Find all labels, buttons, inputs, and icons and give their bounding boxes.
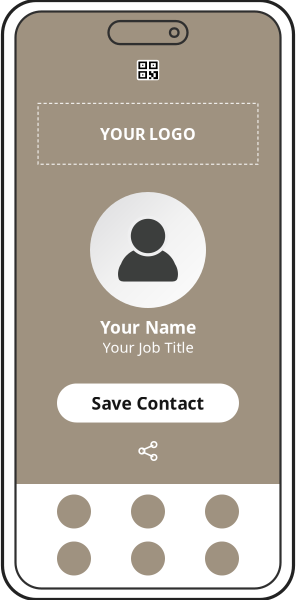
button[interactable]: Contact method (205, 494, 239, 528)
button[interactable]: Share (136, 439, 160, 463)
staticText: Save Contact (91, 391, 204, 414)
staticText: Your Job Title (102, 337, 193, 357)
button[interactable]: Save Contact (57, 383, 239, 422)
button[interactable]: Show QR code (137, 60, 159, 80)
button[interactable]: Contact method (57, 494, 91, 528)
button[interactable]: YOUR LOGO (37, 103, 258, 165)
button[interactable]: Contact method (131, 494, 165, 528)
button[interactable]: Contact method (57, 541, 91, 575)
staticText: Your Name (100, 315, 196, 338)
button[interactable]: Contact method (205, 541, 239, 575)
staticText: YOUR LOGO (100, 123, 196, 144)
button[interactable]: Contact method (131, 541, 165, 575)
